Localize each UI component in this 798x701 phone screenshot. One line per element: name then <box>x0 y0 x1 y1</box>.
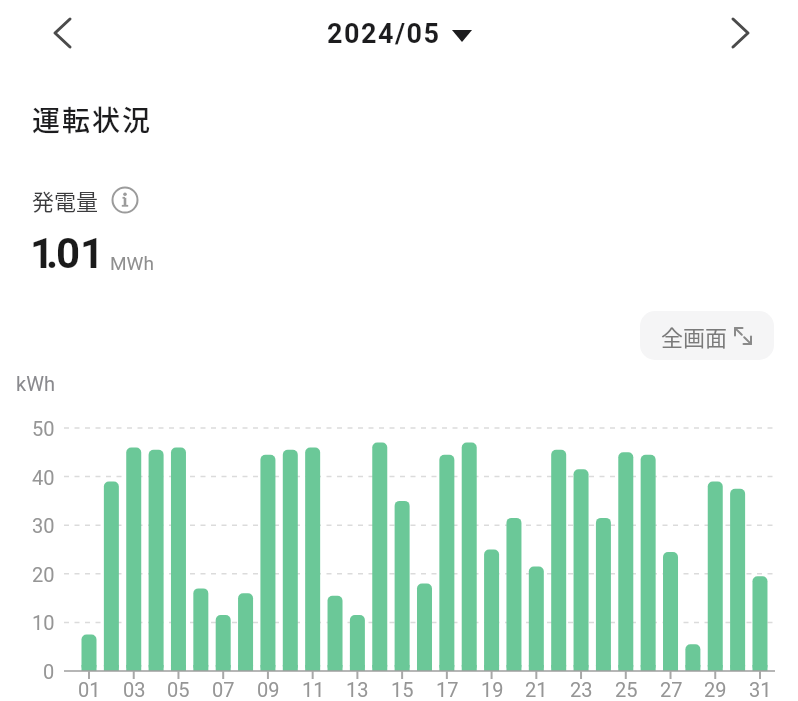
staticText: 07 <box>212 678 235 701</box>
staticText: 30 <box>32 514 55 537</box>
staticText: 1 <box>80 229 105 278</box>
staticText: 27 <box>660 678 683 701</box>
staticText: 03 <box>123 678 146 701</box>
staticText: 11 <box>302 678 325 701</box>
staticText: 全画面 <box>661 320 728 352</box>
staticText: 09 <box>257 678 280 701</box>
staticText: 0 <box>43 660 55 683</box>
staticText: 1 <box>30 229 55 278</box>
staticText: 2024/05 <box>327 18 441 50</box>
staticText: 25 <box>615 678 638 701</box>
staticText: 10 <box>32 611 55 634</box>
staticText: MWh <box>110 252 154 274</box>
button[interactable]: 2024/05 <box>327 18 472 50</box>
staticText: 発電量 <box>32 184 99 216</box>
button[interactable] <box>40 11 84 55</box>
staticText: 40 <box>32 466 55 489</box>
button[interactable]: 全画面 <box>640 311 774 360</box>
staticText: 19 <box>481 678 504 701</box>
staticText: . <box>46 229 59 278</box>
button[interactable] <box>110 185 140 215</box>
staticText: 運転状況 <box>32 99 153 140</box>
staticText: 31 <box>749 678 772 701</box>
staticText: 23 <box>570 678 593 701</box>
staticText: 13 <box>346 678 369 701</box>
staticText: 01 <box>78 678 101 701</box>
staticText: 15 <box>391 678 414 701</box>
staticText: 0 <box>56 229 81 278</box>
staticText: 05 <box>167 678 190 701</box>
staticText: 20 <box>32 563 55 586</box>
staticText: 50 <box>32 417 55 440</box>
staticText: 17 <box>436 678 459 701</box>
button[interactable] <box>714 11 758 55</box>
staticText: 21 <box>525 678 548 701</box>
staticText: kWh <box>16 372 55 395</box>
staticText: 29 <box>704 678 727 701</box>
